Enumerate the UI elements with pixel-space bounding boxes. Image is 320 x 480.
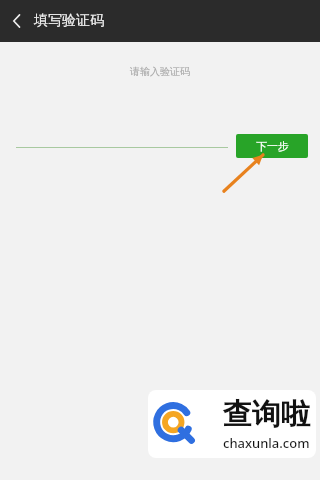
staticText: chaxunla.com [223, 434, 310, 452]
staticText: 填写验证码 [34, 12, 104, 30]
staticText: 下一步 [256, 139, 289, 153]
button[interactable] [16, 116, 228, 148]
staticText: 查询啦 [223, 396, 310, 433]
button[interactable]: Back [0, 4, 34, 38]
button[interactable]: 下一步 [236, 134, 308, 158]
staticText: 请输入验证码 [0, 65, 320, 78]
